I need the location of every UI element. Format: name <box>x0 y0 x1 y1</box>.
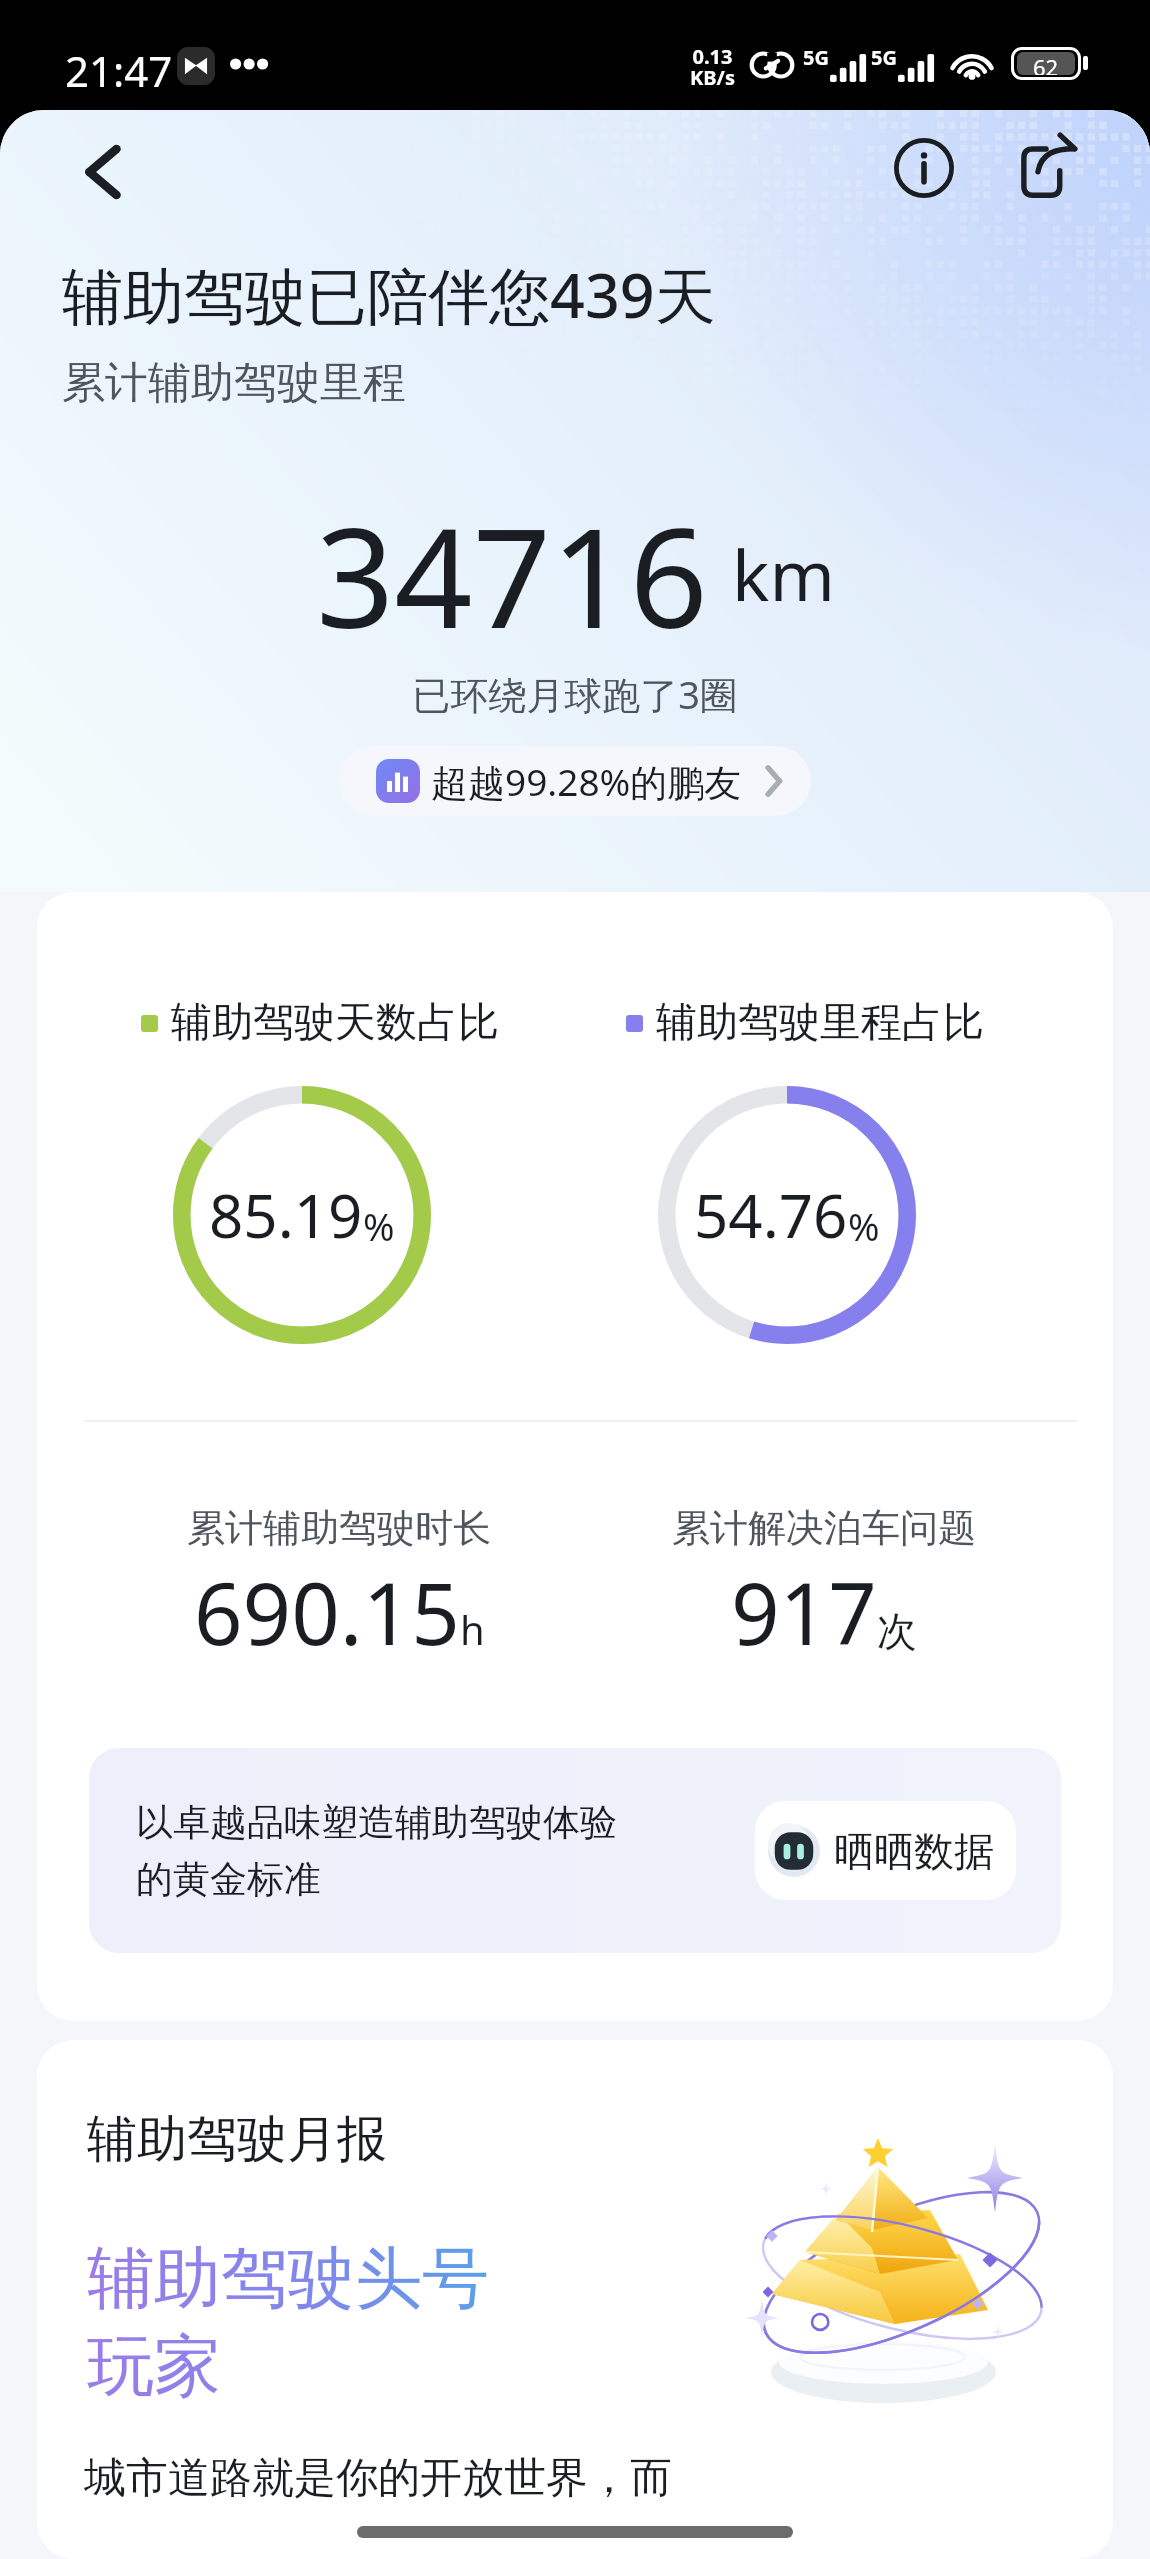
staticText: % <box>363 1200 395 1252</box>
staticText: 34716 <box>316 482 708 660</box>
staticText: 已环绕月球跑了3圈 <box>0 668 1150 720</box>
staticText: 城市道路就是你的开放世界，而 <box>84 2452 672 2505</box>
staticText: 累计解决泊车问题 <box>672 1504 976 1552</box>
staticText: 辅助驾驶天数占比 <box>171 997 499 1049</box>
staticText: 累计辅助驾驶时长 <box>187 1504 491 1552</box>
staticText: % <box>848 1200 880 1252</box>
staticText: 5G <box>803 44 829 71</box>
button[interactable]: Back <box>58 128 146 216</box>
staticText: 54.76 <box>694 1174 848 1256</box>
staticText: 辅助驾驶里程占比 <box>656 997 984 1049</box>
staticText: 辅助驾驶头号 玩家 <box>87 2236 489 2409</box>
staticText: 辅助驾驶月报 <box>87 2108 387 2171</box>
staticText: 62 <box>1033 52 1059 75</box>
staticText: km <box>732 526 835 621</box>
staticText: 累计辅助驾驶里程 <box>62 356 406 410</box>
staticText: 0.13 KB/s <box>690 43 735 91</box>
staticText: 690.15 <box>194 1554 460 1670</box>
staticText: 917 <box>731 1554 877 1670</box>
staticText: 次 <box>877 1606 917 1656</box>
button[interactable]: Info <box>878 122 970 214</box>
staticText: 5G <box>871 44 897 71</box>
staticText: 21:47 <box>65 42 173 99</box>
staticText: 辅助驾驶已陪伴您439天 <box>62 253 716 336</box>
staticText: 85.19 <box>209 1174 363 1256</box>
button[interactable]: 超越99.28%的鹏友 <box>339 746 811 816</box>
button[interactable]: 晒晒数据 <box>755 1801 1016 1900</box>
staticText: h <box>460 1602 485 1656</box>
staticText: 超越99.28%的鹏友 <box>431 756 742 807</box>
button[interactable]: Share <box>996 118 1088 210</box>
staticText: 以卓越品味塑造辅助驾驶体验 的黄金标准 <box>136 1799 755 1903</box>
staticText: 晒晒数据 <box>834 1826 994 1876</box>
